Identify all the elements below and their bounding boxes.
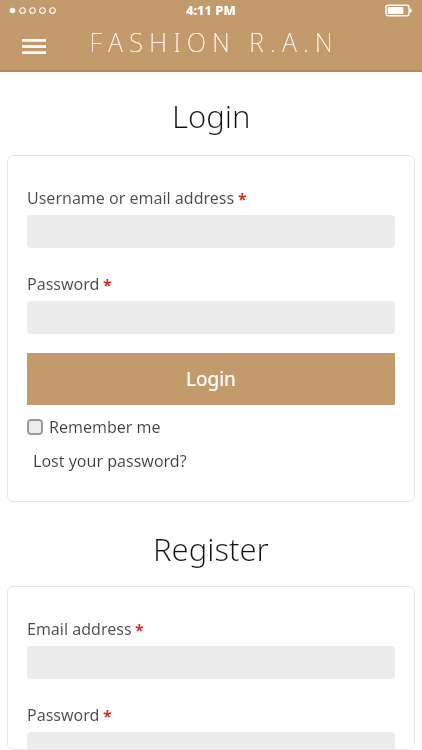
staticText: Remember me [49, 416, 161, 438]
staticText: * [103, 705, 112, 727]
staticText: Username or email address [27, 187, 235, 209]
staticText: Email address [27, 618, 132, 640]
staticText: * [103, 274, 112, 296]
staticText: Login [172, 95, 251, 137]
button[interactable]: Remember me [27, 416, 161, 438]
staticText: 4:11 PM [186, 1, 236, 19]
staticText: * [238, 188, 247, 210]
staticText: * [135, 619, 144, 641]
button[interactable]: Open navigation menu [14, 28, 54, 64]
staticText: Login [186, 366, 236, 392]
button[interactable]: Login [27, 353, 395, 405]
button[interactable]: F A S H I O N R . A . N [89, 25, 333, 59]
button[interactable]: Lost your password? [33, 450, 187, 472]
staticText: Password [27, 704, 100, 726]
staticText: Password [27, 273, 100, 295]
staticText: Register [153, 528, 269, 570]
